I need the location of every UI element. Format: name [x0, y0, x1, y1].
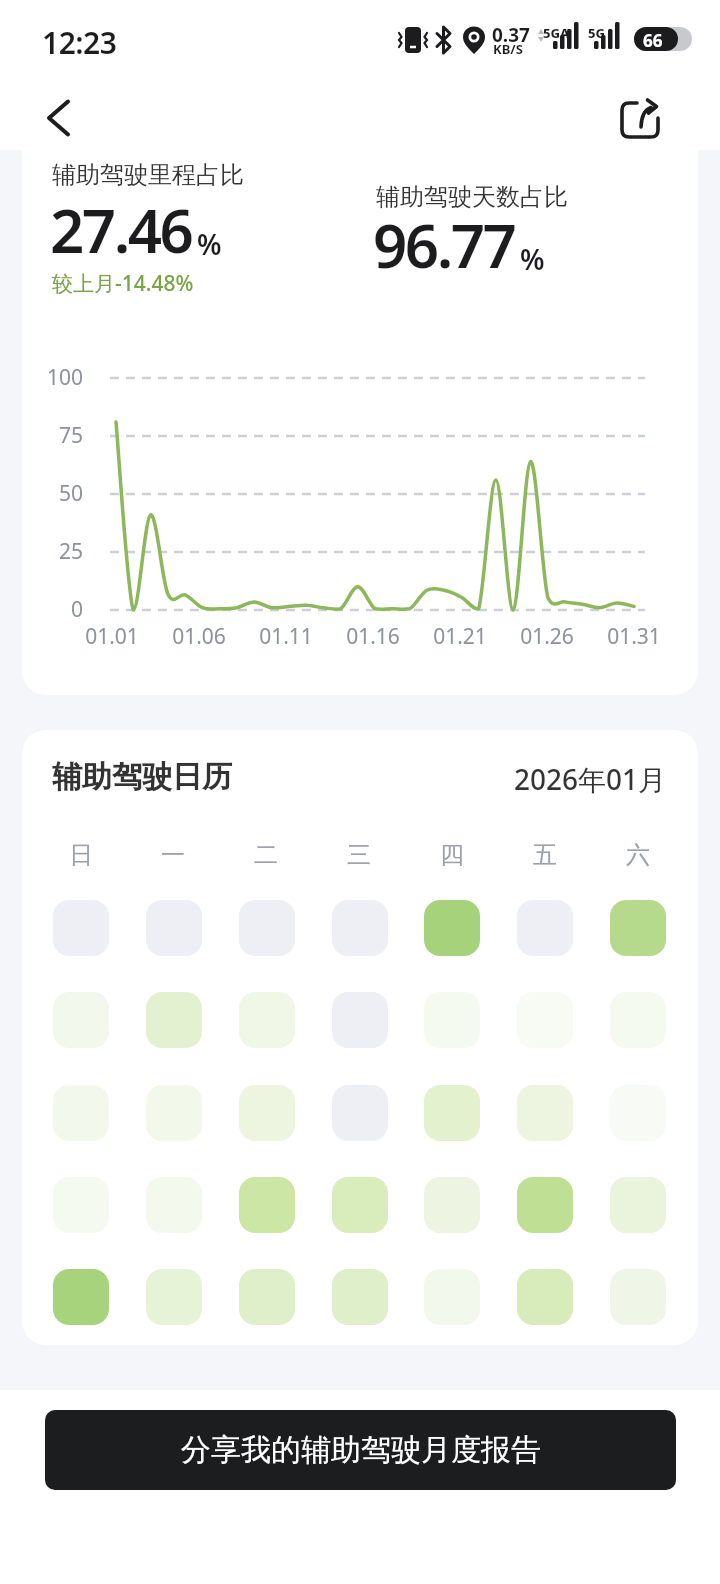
- staticText: 01.16: [328, 622, 418, 651]
- button[interactable]: [608, 88, 672, 148]
- staticText: 0.37: [492, 22, 530, 48]
- staticText: 01.06: [154, 622, 244, 651]
- staticText: 25: [30, 537, 83, 566]
- staticText: 六: [608, 840, 668, 870]
- staticText: 5G: [588, 24, 606, 42]
- staticText: 四: [422, 840, 482, 870]
- staticText: 100: [30, 363, 83, 392]
- staticText: 二: [236, 840, 296, 870]
- staticText: 辅助驾驶天数占比: [376, 182, 568, 212]
- staticText: 2026年01月: [420, 760, 666, 798]
- staticText: 辅助驾驶日历: [52, 758, 232, 796]
- staticText: 01.26: [502, 622, 592, 651]
- staticText: 三: [329, 840, 389, 870]
- staticText: 一: [143, 840, 203, 870]
- staticText: 27.46: [50, 189, 192, 271]
- staticText: 01.31: [589, 622, 679, 651]
- staticText: 66: [643, 29, 663, 52]
- staticText: 五: [515, 840, 575, 870]
- staticText: 较上月-14.48%: [52, 269, 194, 298]
- button[interactable]: 分享我的辅助驾驶月度报告: [45, 1410, 676, 1490]
- staticText: 50: [30, 479, 83, 508]
- staticText: 12:23: [42, 22, 117, 63]
- staticText: 01.21: [415, 622, 505, 651]
- staticText: 0: [30, 595, 83, 624]
- staticText: %: [520, 240, 545, 278]
- staticText: 01.11: [241, 622, 331, 651]
- staticText: 辅助驾驶里程占比: [52, 160, 244, 190]
- staticText: %: [197, 225, 222, 263]
- staticText: 96.77: [373, 204, 515, 286]
- staticText: 5GA: [543, 24, 570, 42]
- staticText: 日: [51, 840, 111, 870]
- staticText: KB/S: [493, 40, 523, 58]
- staticText: 75: [30, 421, 83, 450]
- button[interactable]: [34, 88, 94, 148]
- staticText: 分享我的辅助驾驶月度报告: [181, 1431, 541, 1469]
- staticText: 01.01: [67, 622, 157, 651]
